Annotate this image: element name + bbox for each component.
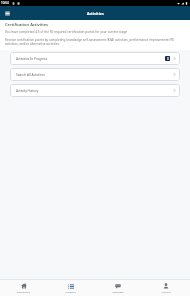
button[interactable]: Open navigation menu (3, 9, 12, 18)
button[interactable]: Dashboard (0, 280, 47, 296)
staticText: Receive certification points by completi… (5, 38, 185, 46)
staticText: Search All Activities (16, 73, 45, 77)
button[interactable]: Search All Activities (10, 68, 180, 81)
staticText: 0 (167, 57, 169, 61)
button[interactable]: Messages (94, 280, 142, 296)
staticText: You have completed 4.5 of the 50 require… (5, 30, 128, 34)
staticText: Messages (112, 290, 124, 293)
staticText: Activities (87, 11, 104, 16)
button[interactable]: Activities (47, 280, 94, 296)
button[interactable]: Activities In Progress (10, 52, 180, 65)
button[interactable]: Account (142, 280, 190, 296)
staticText: 10:54 (1, 1, 9, 5)
button[interactable]: Activity History (10, 84, 180, 97)
staticText: Activity History (16, 89, 39, 93)
staticText: Account (161, 290, 171, 293)
staticText: Dashboard (17, 290, 30, 293)
staticText: Activities (65, 290, 76, 293)
staticText: Certification Activities (5, 22, 49, 27)
staticText: Activities In Progress (16, 57, 48, 61)
